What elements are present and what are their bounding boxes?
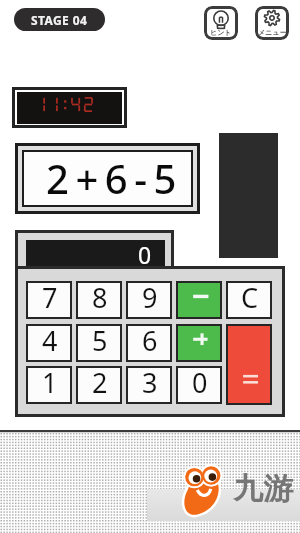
staticText: 0 [138, 239, 152, 267]
staticText: 7 [42, 279, 58, 313]
staticText: 1 [42, 364, 58, 398]
button[interactable]: 7 [28, 283, 70, 317]
button[interactable]: 5 [78, 326, 120, 360]
staticText: 3 [142, 364, 158, 398]
button[interactable]: 1 [28, 368, 70, 402]
button[interactable] [178, 283, 220, 317]
staticText: 8 [92, 279, 108, 313]
staticText: STAGE 04 [31, 12, 88, 28]
staticText: 2+6-5 [46, 151, 183, 204]
button[interactable]: C [228, 283, 270, 317]
button[interactable]: 3 [128, 368, 170, 402]
staticText: 9 [142, 279, 158, 313]
button[interactable]: STAGE 04 [14, 8, 105, 31]
button[interactable]: ヒント [204, 6, 238, 40]
button[interactable]: 2 [78, 368, 120, 402]
staticText: 5 [92, 322, 108, 356]
staticText: C [241, 279, 259, 313]
staticText: 2 [92, 364, 108, 398]
button[interactable]: 4 [28, 326, 70, 360]
button[interactable]: 8 [78, 283, 120, 317]
staticText: 6 [142, 322, 158, 356]
button[interactable] [228, 326, 270, 403]
staticText: メニュー [258, 28, 287, 37]
staticText: ヒント [210, 28, 232, 37]
button[interactable]: 0 [178, 368, 220, 402]
staticText: 九游 [233, 470, 293, 508]
button[interactable] [178, 326, 220, 360]
staticText: 4 [42, 322, 58, 356]
button[interactable]: 6 [128, 326, 170, 360]
button[interactable]: メニュー [255, 6, 289, 40]
staticText: 0 [192, 364, 208, 398]
button[interactable]: 9 [128, 283, 170, 317]
